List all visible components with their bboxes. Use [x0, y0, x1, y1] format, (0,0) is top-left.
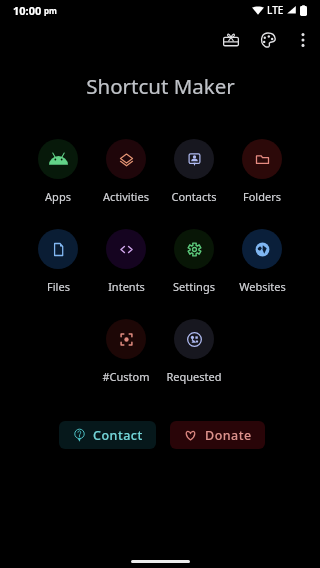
button[interactable]: Websites [228, 229, 296, 294]
button[interactable]: Activities [92, 139, 160, 204]
staticText: Apps [45, 189, 71, 204]
staticText: Websites [239, 279, 286, 294]
staticText: Files [47, 279, 70, 294]
staticText: pm [44, 5, 57, 16]
button[interactable]: Requested [160, 319, 228, 384]
button[interactable]: Intents [92, 229, 160, 294]
button[interactable]: Files [24, 229, 92, 294]
button[interactable]: Folders [228, 139, 296, 204]
staticText: Intents [108, 279, 145, 294]
staticText: Shortcut Maker [86, 72, 235, 100]
staticText: #Custom [102, 369, 150, 384]
button[interactable]: Settings [160, 229, 228, 294]
staticText: Settings [173, 279, 215, 294]
staticText: Donate [205, 427, 252, 444]
staticText: Activities [103, 189, 149, 204]
button[interactable]: #Custom [92, 319, 160, 384]
staticText: 10:00 [13, 3, 42, 18]
staticText: LTE [267, 3, 284, 17]
staticText: Folders [243, 189, 281, 204]
button[interactable]: Donate [170, 421, 265, 449]
staticText: Contact [93, 427, 143, 444]
button[interactable]: Apps [24, 139, 92, 204]
staticText: Contacts [171, 189, 217, 204]
button[interactable]: More options [285, 22, 320, 57]
button[interactable]: Contact [59, 421, 156, 449]
staticText: Requested [166, 369, 222, 384]
button[interactable]: Gift card [213, 22, 248, 57]
button[interactable]: Contacts [160, 139, 228, 204]
button[interactable]: Theme [250, 22, 285, 57]
